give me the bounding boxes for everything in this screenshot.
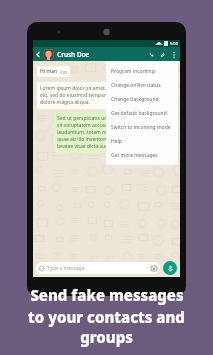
staticText: Sed ut perspiciatis unde omnis iste natu…: [57, 115, 173, 150]
button[interactable]: Call: [146, 49, 157, 60]
staticText: to your contacts and groups: [0, 307, 213, 347]
staticText: Hi man: [40, 68, 58, 75]
button[interactable]: Get default background: [106, 106, 178, 120]
button[interactable]: Change online status: [106, 78, 178, 92]
button[interactable]: Lorem ipsum dolor sit amet, consectetur …: [37, 82, 172, 109]
button[interactable]: Switch to incoming mode: [106, 120, 178, 134]
staticText: Type a message: [47, 265, 85, 272]
button[interactable]: Help: [106, 134, 178, 148]
button[interactable]: Attach: [157, 49, 168, 60]
staticText: Lorem ipsum dolor sit amet, consectetur …: [40, 85, 169, 106]
button[interactable]: More options: [168, 49, 179, 60]
button[interactable]: Program incoming message: [106, 64, 178, 78]
button[interactable]: Sed ut perspiciatis unde omnis iste natu…: [54, 112, 176, 153]
staticText: Send fake messages: [30, 285, 184, 305]
button[interactable]: Record voice message: [163, 261, 177, 275]
staticText: 5:00: [170, 41, 178, 46]
staticText: Get default background: [111, 110, 167, 117]
button[interactable]: Back: [33, 49, 43, 59]
button[interactable]: Get more messages: [106, 148, 178, 162]
staticText: 5:00: [60, 70, 67, 75]
staticText: Program incoming message: [111, 68, 173, 75]
staticText: Switch to incoming mode: [111, 124, 171, 131]
staticText: Help: [111, 138, 122, 145]
button[interactable]: [43, 49, 54, 60]
staticText: Change background image: [111, 96, 173, 103]
button[interactable]: Type a message: [36, 262, 160, 274]
staticText: Change online status: [111, 82, 161, 89]
staticText: Crush Doe: [57, 50, 90, 59]
button[interactable]: Hi man: [37, 66, 70, 77]
button[interactable]: Change background image: [106, 92, 178, 106]
staticText: Get more messages: [111, 152, 158, 159]
